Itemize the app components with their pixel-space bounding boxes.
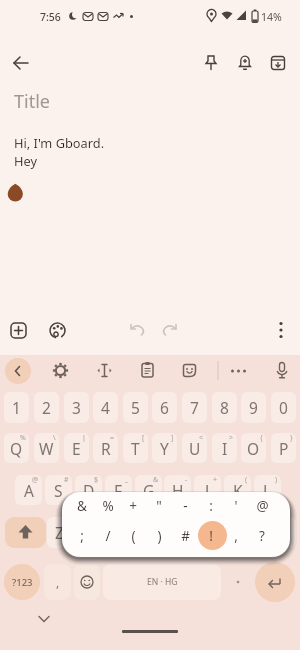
- button[interactable]: 2: [34, 392, 59, 423]
- staticText: 7:56: [40, 10, 61, 24]
- staticText: Title: [14, 89, 50, 114]
- button[interactable]: ?123: [4, 564, 40, 600]
- staticText: [: [142, 433, 145, 443]
- button[interactable]: J: [194, 475, 221, 505]
- button[interactable]: [269, 54, 287, 72]
- staticText: 14%: [261, 10, 282, 24]
- button[interactable]: [255, 562, 295, 602]
- staticText: _: [125, 475, 129, 485]
- button[interactable]: N: [195, 517, 220, 548]
- button[interactable]: T: [123, 433, 148, 463]
- button[interactable]: [49, 322, 66, 339]
- button[interactable]: S: [45, 475, 72, 505]
- button[interactable]: O: [241, 433, 266, 463]
- button[interactable]: W: [34, 433, 59, 463]
- button[interactable]: [36, 613, 52, 625]
- button[interactable]: [5, 358, 31, 384]
- button[interactable]: D: [75, 475, 102, 505]
- button[interactable]: 8: [212, 392, 237, 423]
- staticText: @: [256, 497, 269, 515]
- staticText: 0: [279, 397, 288, 418]
- button[interactable]: F: [105, 475, 132, 505]
- staticText: ,: [234, 527, 238, 545]
- button[interactable]: [12, 54, 30, 72]
- staticText: +: [129, 497, 137, 515]
- button[interactable]: C: [106, 517, 131, 548]
- staticText: !: [209, 527, 213, 545]
- staticText: (: [131, 527, 136, 545]
- staticText: +: [213, 475, 218, 485]
- staticText: H: [172, 480, 184, 501]
- button[interactable]: EN · HG: [103, 564, 221, 600]
- button[interactable]: [202, 54, 220, 72]
- button[interactable]: [275, 320, 287, 340]
- button[interactable]: [74, 564, 100, 600]
- staticText: R: [101, 438, 111, 459]
- button[interactable]: ,: [44, 564, 71, 600]
- button[interactable]: 3: [64, 392, 89, 423]
- staticText: ): [157, 527, 162, 545]
- button[interactable]: G: [135, 475, 162, 505]
- staticText: G: [143, 480, 155, 501]
- button[interactable]: 7: [182, 392, 207, 423]
- staticText: U: [189, 438, 201, 459]
- button[interactable]: L: [254, 475, 281, 505]
- button[interactable]: V: [135, 517, 160, 548]
- staticText: ': [234, 497, 238, 515]
- staticText: %: [20, 433, 26, 443]
- button[interactable]: U: [182, 433, 207, 463]
- button[interactable]: R: [93, 433, 118, 463]
- staticText: }: [290, 433, 293, 443]
- button[interactable]: H: [164, 475, 191, 505]
- staticText: -: [185, 475, 188, 485]
- button[interactable]: [181, 362, 198, 379]
- button[interactable]: [10, 322, 27, 339]
- staticText: \: [53, 433, 56, 443]
- button[interactable]: [229, 367, 249, 375]
- button[interactable]: I: [212, 433, 237, 463]
- button[interactable]: [253, 517, 296, 548]
- button[interactable]: E: [64, 433, 89, 463]
- staticText: 9: [249, 397, 258, 418]
- staticText: ?: [259, 527, 265, 545]
- button[interactable]: [5, 517, 46, 548]
- staticText: :: [209, 497, 213, 515]
- staticText: #: [64, 475, 69, 485]
- staticText: Hi, I'm Gboard.: [14, 134, 105, 151]
- button[interactable]: 9: [241, 392, 266, 423]
- button[interactable]: [224, 564, 251, 600]
- button[interactable]: Y: [152, 433, 177, 463]
- button[interactable]: [236, 54, 254, 72]
- staticText: Y: [160, 438, 169, 459]
- button[interactable]: A: [15, 475, 42, 505]
- button[interactable]: 4: [93, 392, 118, 423]
- button[interactable]: P: [271, 433, 296, 463]
- staticText: &: [153, 475, 159, 485]
- button[interactable]: [129, 323, 145, 338]
- staticText: B: [172, 522, 183, 543]
- staticText: W: [39, 438, 54, 459]
- button[interactable]: 1: [4, 392, 29, 423]
- staticText: A: [24, 480, 34, 501]
- button[interactable]: [139, 361, 156, 379]
- staticText: ,: [56, 574, 60, 590]
- button[interactable]: K: [224, 475, 251, 505]
- button[interactable]: M: [224, 517, 249, 548]
- button[interactable]: Q: [4, 433, 29, 463]
- button[interactable]: Z: [47, 517, 72, 548]
- staticText: Q: [10, 438, 23, 459]
- button[interactable]: 0: [271, 392, 296, 423]
- staticText: S: [54, 480, 63, 501]
- button[interactable]: X: [76, 517, 101, 548]
- button[interactable]: B: [165, 517, 190, 548]
- button[interactable]: 5: [123, 392, 148, 423]
- button[interactable]: 6: [152, 392, 177, 423]
- staticText: J: [205, 480, 210, 501]
- button[interactable]: [162, 323, 178, 338]
- button[interactable]: [52, 362, 69, 379]
- button[interactable]: [274, 361, 290, 380]
- button[interactable]: [96, 362, 113, 379]
